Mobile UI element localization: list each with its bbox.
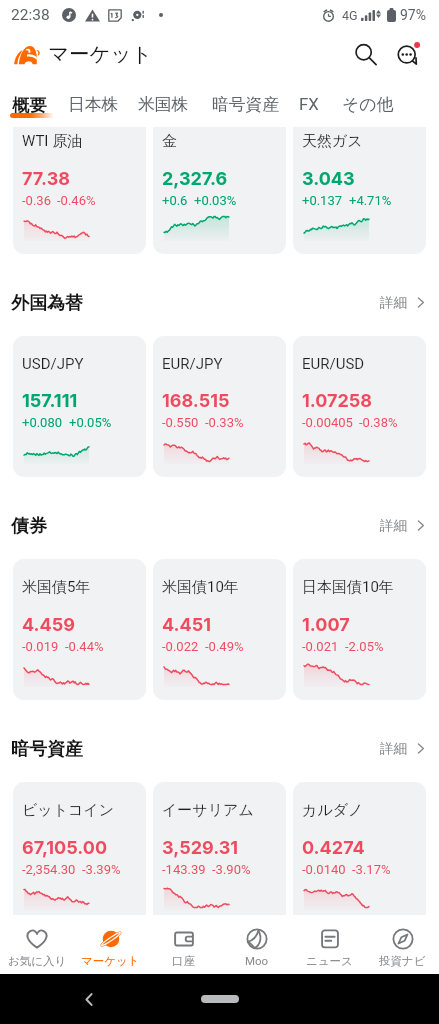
- staticText: 概要: [12, 94, 47, 116]
- button[interactable]: 詳細: [380, 740, 427, 757]
- staticText: -143.39: [162, 862, 206, 877]
- staticText: 4.451: [162, 614, 212, 636]
- staticText: +4.71%: [349, 193, 392, 208]
- staticText: 22:38: [11, 6, 50, 24]
- staticText: WTI 原油: [22, 132, 83, 151]
- button[interactable]: ビットコイン: [13, 782, 146, 915]
- staticText: 97%: [400, 7, 426, 23]
- button[interactable]: WTI 原油: [13, 127, 146, 254]
- button[interactable]: 金: [153, 127, 286, 254]
- staticText: 168.515: [162, 390, 230, 412]
- staticText: +0.05%: [69, 415, 112, 430]
- staticText: 詳細: [380, 517, 407, 534]
- staticText: マーケット: [81, 954, 140, 968]
- button[interactable]: カルダノ: [293, 782, 426, 915]
- staticText: -0.019: [22, 639, 59, 654]
- staticText: 2,327.6: [162, 168, 228, 190]
- staticText: 77.38: [22, 168, 70, 190]
- button[interactable]: 概要: [12, 94, 68, 116]
- button[interactable]: 日本株: [68, 94, 138, 115]
- button[interactable]: Messages: [388, 34, 428, 74]
- button[interactable]: Moo: [220, 915, 293, 967]
- staticText: 0.4274: [302, 837, 365, 859]
- staticText: USD/JPY: [22, 355, 84, 373]
- staticText: 米国債10年: [162, 578, 239, 597]
- staticText: +0.6: [162, 193, 188, 208]
- staticText: 3,529.31: [162, 837, 239, 859]
- staticText: 暗号資産: [11, 738, 83, 761]
- staticText: 日本株: [68, 94, 119, 115]
- staticText: EUR/JPY: [162, 355, 223, 373]
- staticText: カルダノ: [302, 801, 364, 820]
- staticText: +0.080: [22, 415, 63, 430]
- staticText: -0.49%: [205, 639, 244, 654]
- staticText: 日本国債10年: [302, 578, 394, 597]
- button[interactable]: マーケット: [74, 915, 147, 968]
- button[interactable]: その他: [342, 94, 394, 115]
- staticText: FX: [299, 94, 319, 114]
- staticText: -0.38%: [359, 415, 398, 430]
- staticText: -3.90%: [212, 862, 251, 877]
- button[interactable]: 詳細: [380, 517, 427, 534]
- button[interactable]: 暗号資産: [212, 94, 299, 115]
- button[interactable]: EUR/USD: [293, 336, 426, 477]
- staticText: 67,105.00: [22, 837, 108, 859]
- button[interactable]: 天然ガス: [293, 127, 426, 254]
- staticText: -0.0140: [302, 862, 346, 877]
- staticText: 金: [162, 132, 177, 151]
- staticText: EUR/USD: [302, 355, 365, 373]
- staticText: -0.00405: [302, 415, 353, 430]
- staticText: 米国債5年: [22, 578, 91, 597]
- staticText: +0.137: [302, 193, 343, 208]
- staticText: 157.111: [22, 390, 78, 412]
- staticText: 4G: [342, 8, 358, 23]
- staticText: -0.33%: [205, 415, 244, 430]
- button[interactable]: 米国債5年: [13, 559, 146, 700]
- button[interactable]: 詳細: [380, 294, 427, 311]
- staticText: -2,354.30: [22, 862, 76, 877]
- staticText: -0.46%: [57, 193, 96, 208]
- button[interactable]: 口座: [147, 915, 220, 968]
- staticText: 口座: [172, 954, 195, 968]
- staticText: 米国株: [138, 94, 189, 115]
- staticText: +0.03%: [194, 193, 237, 208]
- staticText: マーケット: [48, 41, 153, 67]
- button[interactable]: 日本国債10年: [293, 559, 426, 700]
- other: Back: [81, 991, 98, 1008]
- staticText: その他: [342, 94, 394, 115]
- button[interactable]: 米国債10年: [153, 559, 286, 700]
- staticText: -2.05%: [345, 639, 384, 654]
- staticText: ビットコイン: [22, 801, 115, 820]
- staticText: 詳細: [380, 740, 407, 757]
- staticText: 債券: [11, 515, 47, 538]
- staticText: -3.17%: [352, 862, 391, 877]
- staticText: 天然ガス: [302, 132, 363, 151]
- staticText: Moo: [245, 954, 269, 967]
- button[interactable]: ニュース: [293, 915, 366, 968]
- staticText: お気に入り: [8, 954, 67, 968]
- staticText: 3.043: [302, 168, 355, 190]
- staticText: イーサリアム: [162, 801, 254, 820]
- staticText: 詳細: [380, 294, 407, 311]
- staticText: -0.44%: [65, 639, 104, 654]
- button[interactable]: EUR/JPY: [153, 336, 286, 477]
- button[interactable]: Search: [345, 34, 385, 74]
- button[interactable]: FX: [299, 94, 342, 114]
- staticText: 4.459: [22, 614, 75, 636]
- staticText: -0.022: [162, 639, 199, 654]
- button[interactable]: お気に入り: [0, 915, 74, 968]
- staticText: ニュース: [306, 954, 353, 968]
- staticText: -0.021: [302, 639, 339, 654]
- staticText: -3.39%: [82, 862, 121, 877]
- staticText: 1.007: [302, 614, 350, 636]
- staticText: 暗号資産: [212, 94, 280, 115]
- staticText: 1.07258: [302, 390, 373, 412]
- button[interactable]: イーサリアム: [153, 782, 286, 915]
- staticText: -0.550: [162, 415, 199, 430]
- button[interactable]: 投資ナビ: [366, 915, 439, 968]
- staticText: -0.36: [22, 193, 51, 208]
- button[interactable]: 米国株: [138, 94, 212, 115]
- staticText: 投資ナビ: [379, 954, 426, 968]
- staticText: 外国為替: [11, 292, 83, 315]
- button[interactable]: USD/JPY: [13, 336, 146, 477]
